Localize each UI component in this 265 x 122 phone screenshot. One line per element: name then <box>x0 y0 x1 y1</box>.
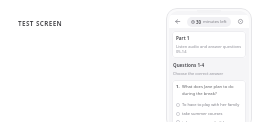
button[interactable]: To have to play with her family <box>176 100 242 109</box>
staticText: Part 1 <box>176 35 190 41</box>
staticText: Questions 1-4 <box>173 62 205 68</box>
button[interactable]: 30 <box>187 17 231 27</box>
staticText: minutes left <box>203 19 227 25</box>
staticText: TEST SCREEN <box>18 19 63 28</box>
staticText: What does Jane plan to do during the bre… <box>182 84 242 96</box>
button[interactable]: take an overseas holiday <box>176 118 242 122</box>
staticText: take an overseas holiday <box>182 120 229 122</box>
staticText: take summer courses <box>182 111 223 116</box>
staticText: To have to play with her family <box>182 102 240 107</box>
button[interactable]: Back <box>173 17 182 26</box>
staticText: Listen audio and answer questions 05-14 <box>176 44 242 54</box>
staticText: 30 <box>196 19 202 25</box>
staticText: Choose the correct answer <box>173 71 224 76</box>
button[interactable]: Help <box>236 17 245 26</box>
button[interactable]: Part 1 <box>172 31 246 58</box>
staticText: 1. <box>176 84 180 90</box>
button[interactable]: take summer courses <box>176 109 242 118</box>
